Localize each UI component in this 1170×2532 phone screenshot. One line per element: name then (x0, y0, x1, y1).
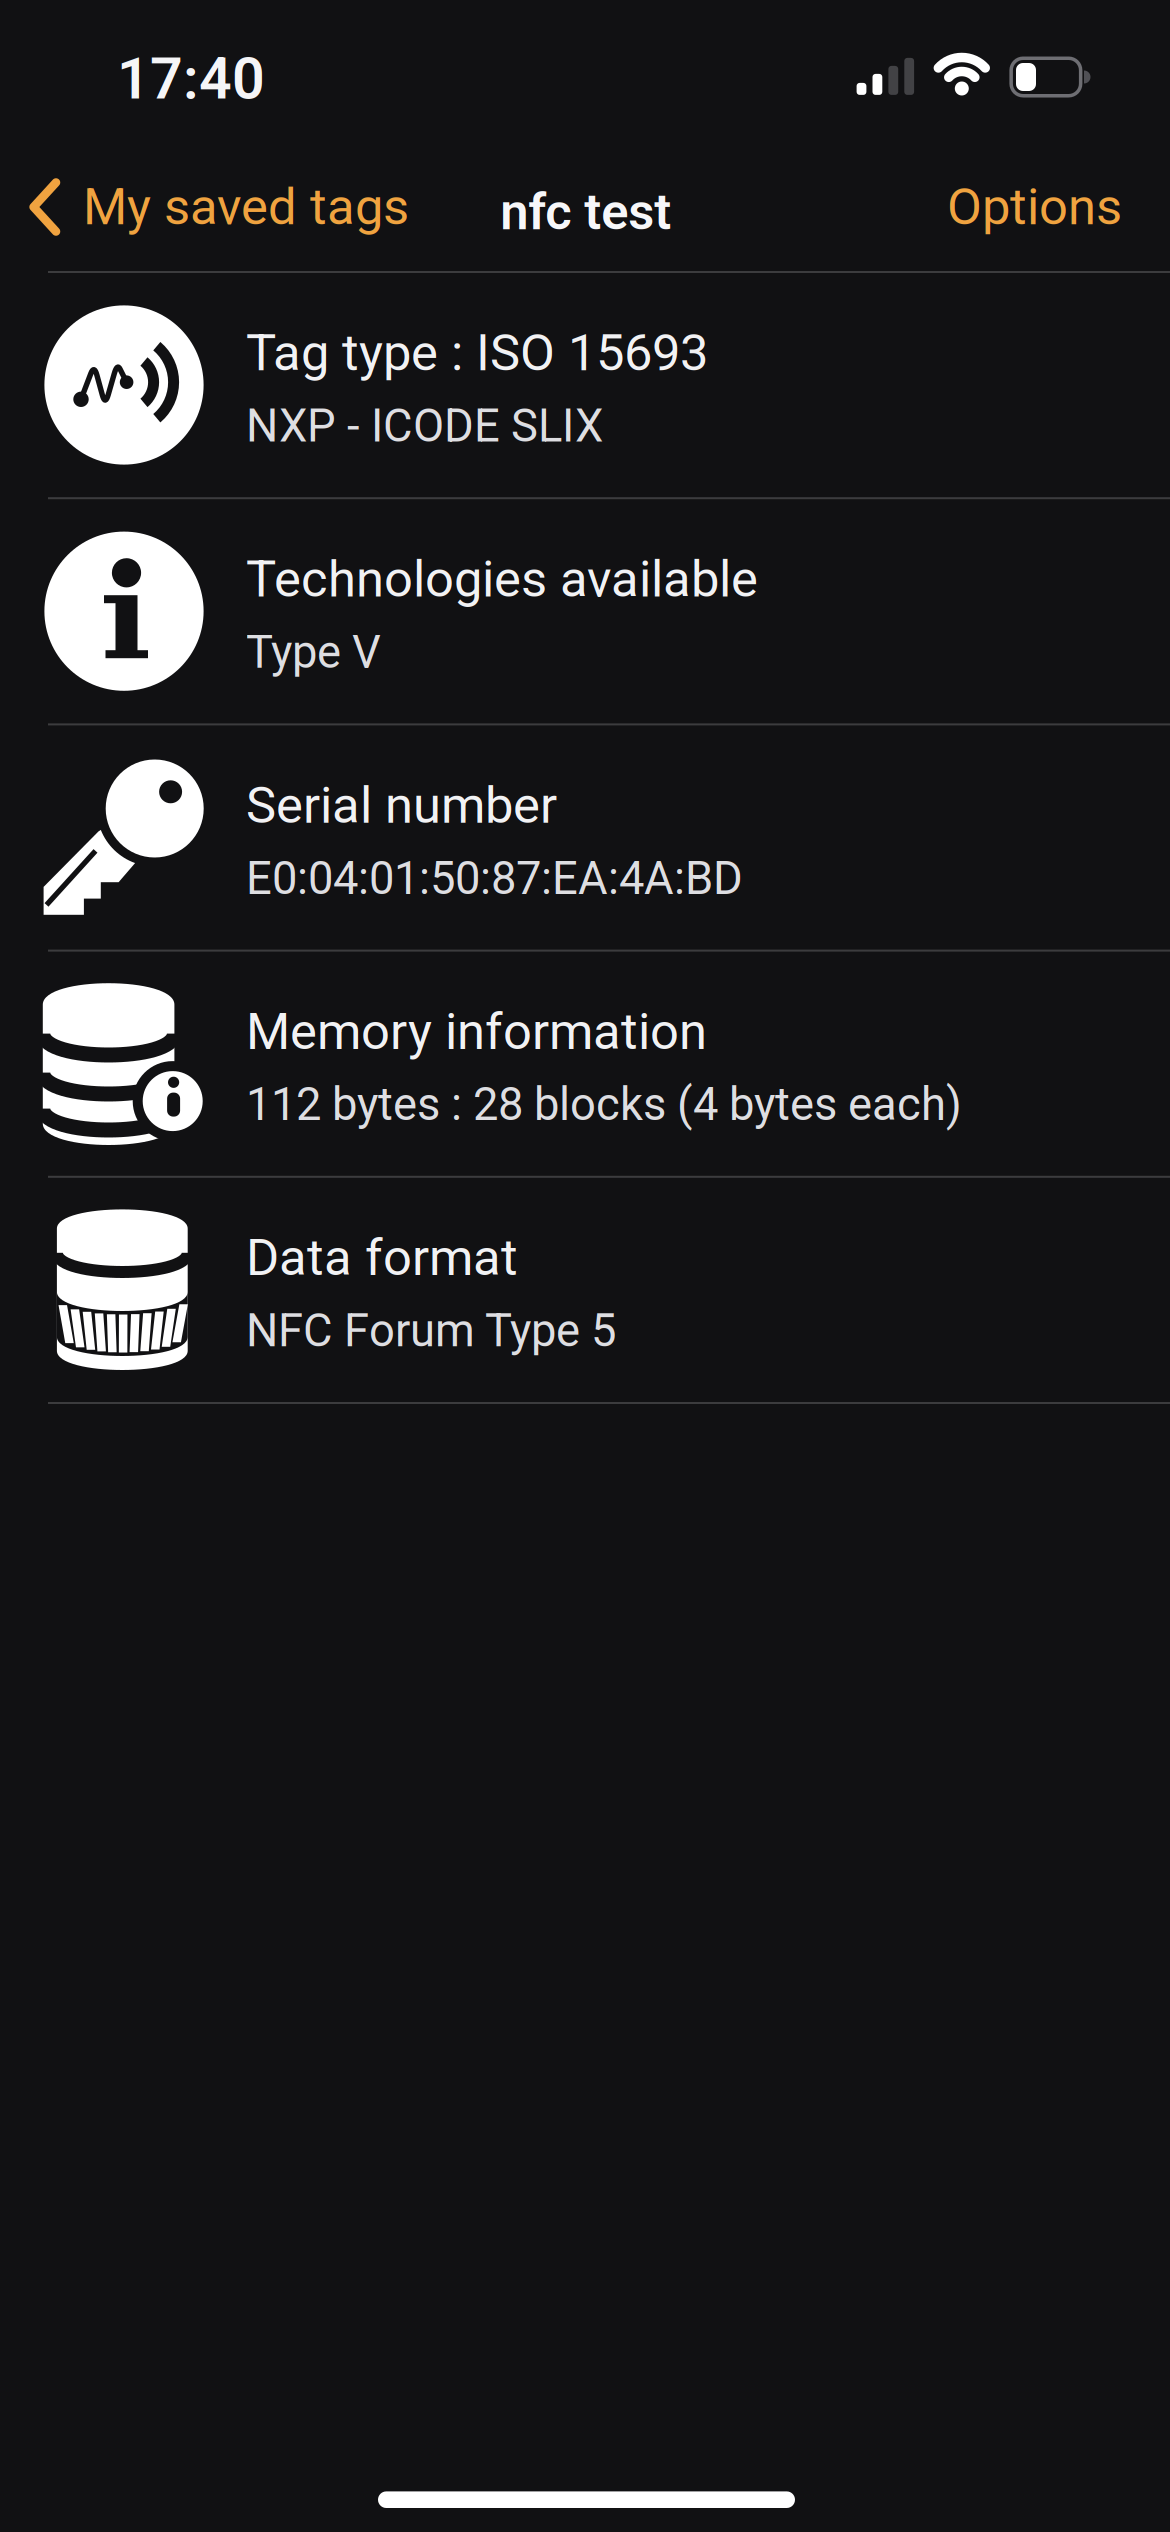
staticText: Type V (246, 626, 381, 679)
button[interactable]: Tag type : ISO 15693 (0, 272, 1170, 498)
staticText: Technologies available (246, 549, 758, 609)
staticText: Memory information (246, 1002, 707, 1061)
button[interactable]: Serial number (0, 724, 1170, 951)
staticText: nfc test (500, 182, 671, 242)
button[interactable]: Data format (0, 1177, 1170, 1403)
staticText: 112 bytes : 28 blocks (4 bytes each) (246, 1078, 962, 1131)
button[interactable]: Memory information (0, 951, 1170, 1177)
button[interactable]: Technologies available (0, 498, 1170, 724)
staticText: Tag type : ISO 15693 (246, 323, 708, 383)
staticText: Serial number (246, 776, 557, 835)
staticText: Data format (246, 1228, 518, 1287)
button[interactable]: Options (822, 160, 1122, 254)
button[interactable]: My saved tags (0, 160, 440, 254)
staticText: NXP - ICODE SLIX (246, 399, 603, 452)
staticText: E0:04:01:50:87:EA:4A:BD (246, 852, 743, 905)
staticText: My saved tags (83, 177, 409, 237)
staticText: NFC Forum Type 5 (246, 1304, 616, 1357)
staticText: Options (947, 177, 1122, 237)
staticText: 17:40 (117, 45, 265, 113)
